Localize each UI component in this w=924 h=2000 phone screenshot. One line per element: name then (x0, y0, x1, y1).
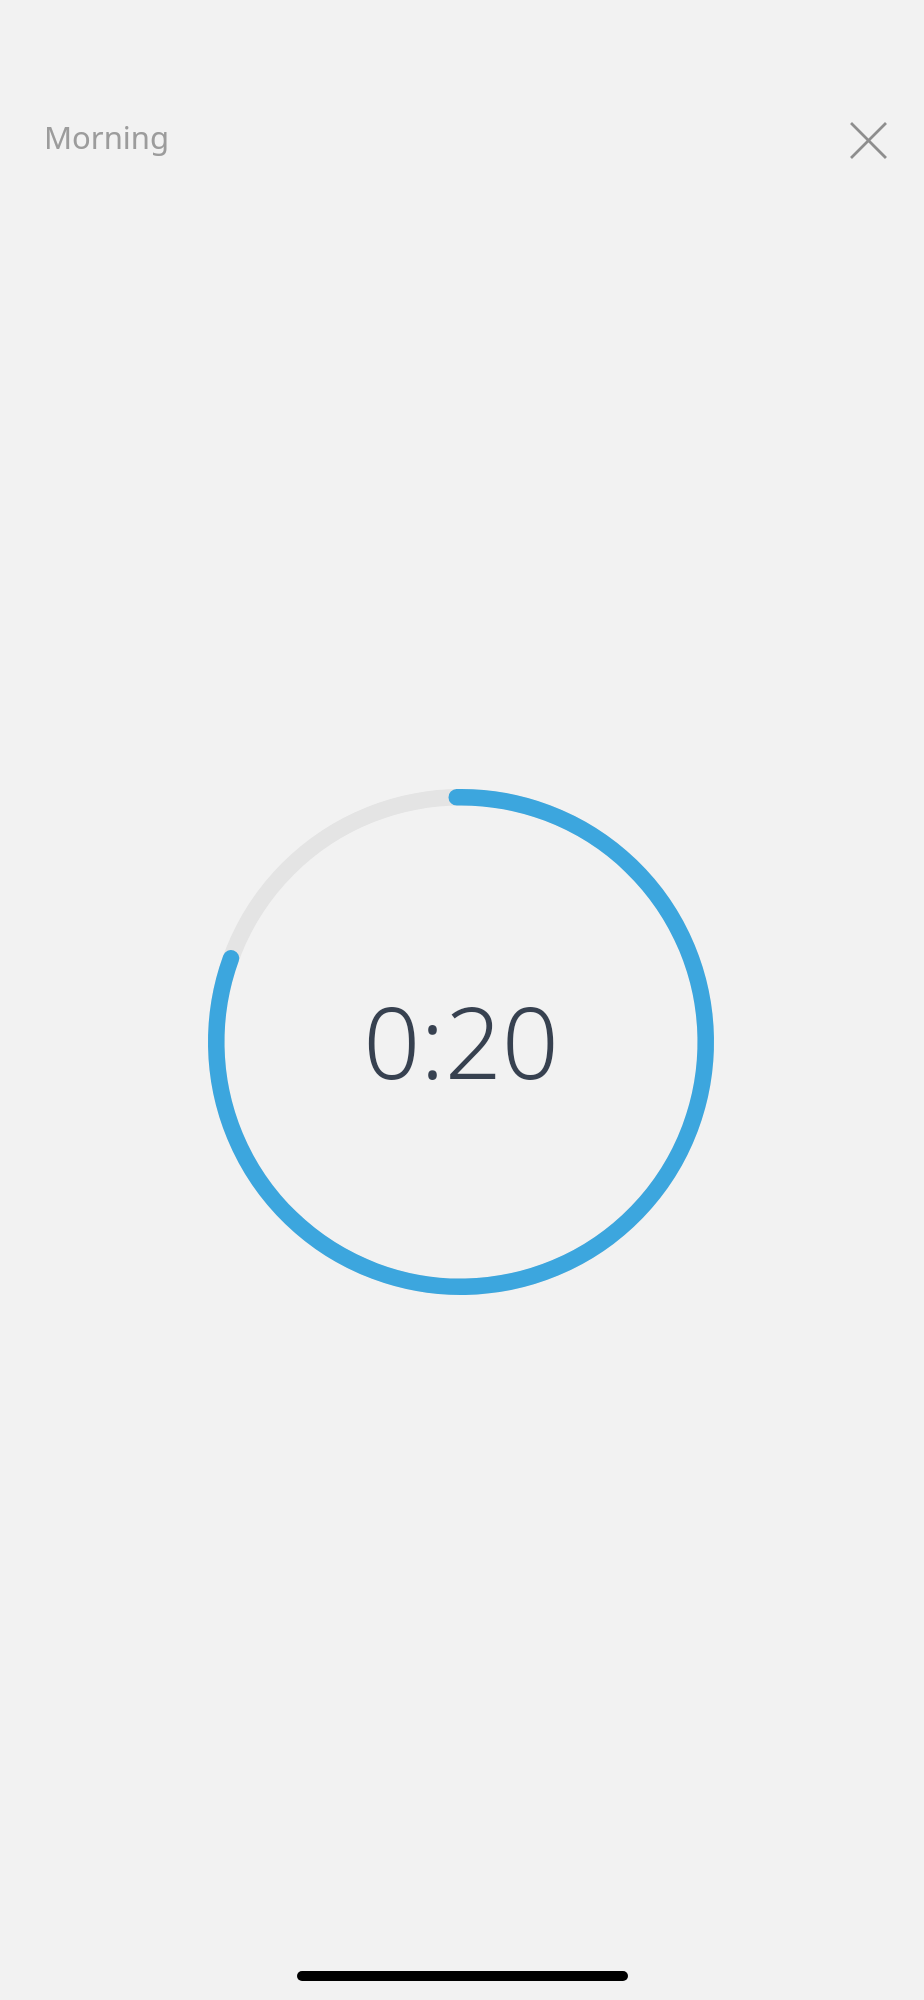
button[interactable]: Close (828, 100, 908, 180)
staticText: 0:20 (363, 972, 559, 1108)
button[interactable]: Timer 0:20 remaining (208, 789, 714, 1295)
staticText: Morning (44, 116, 170, 158)
